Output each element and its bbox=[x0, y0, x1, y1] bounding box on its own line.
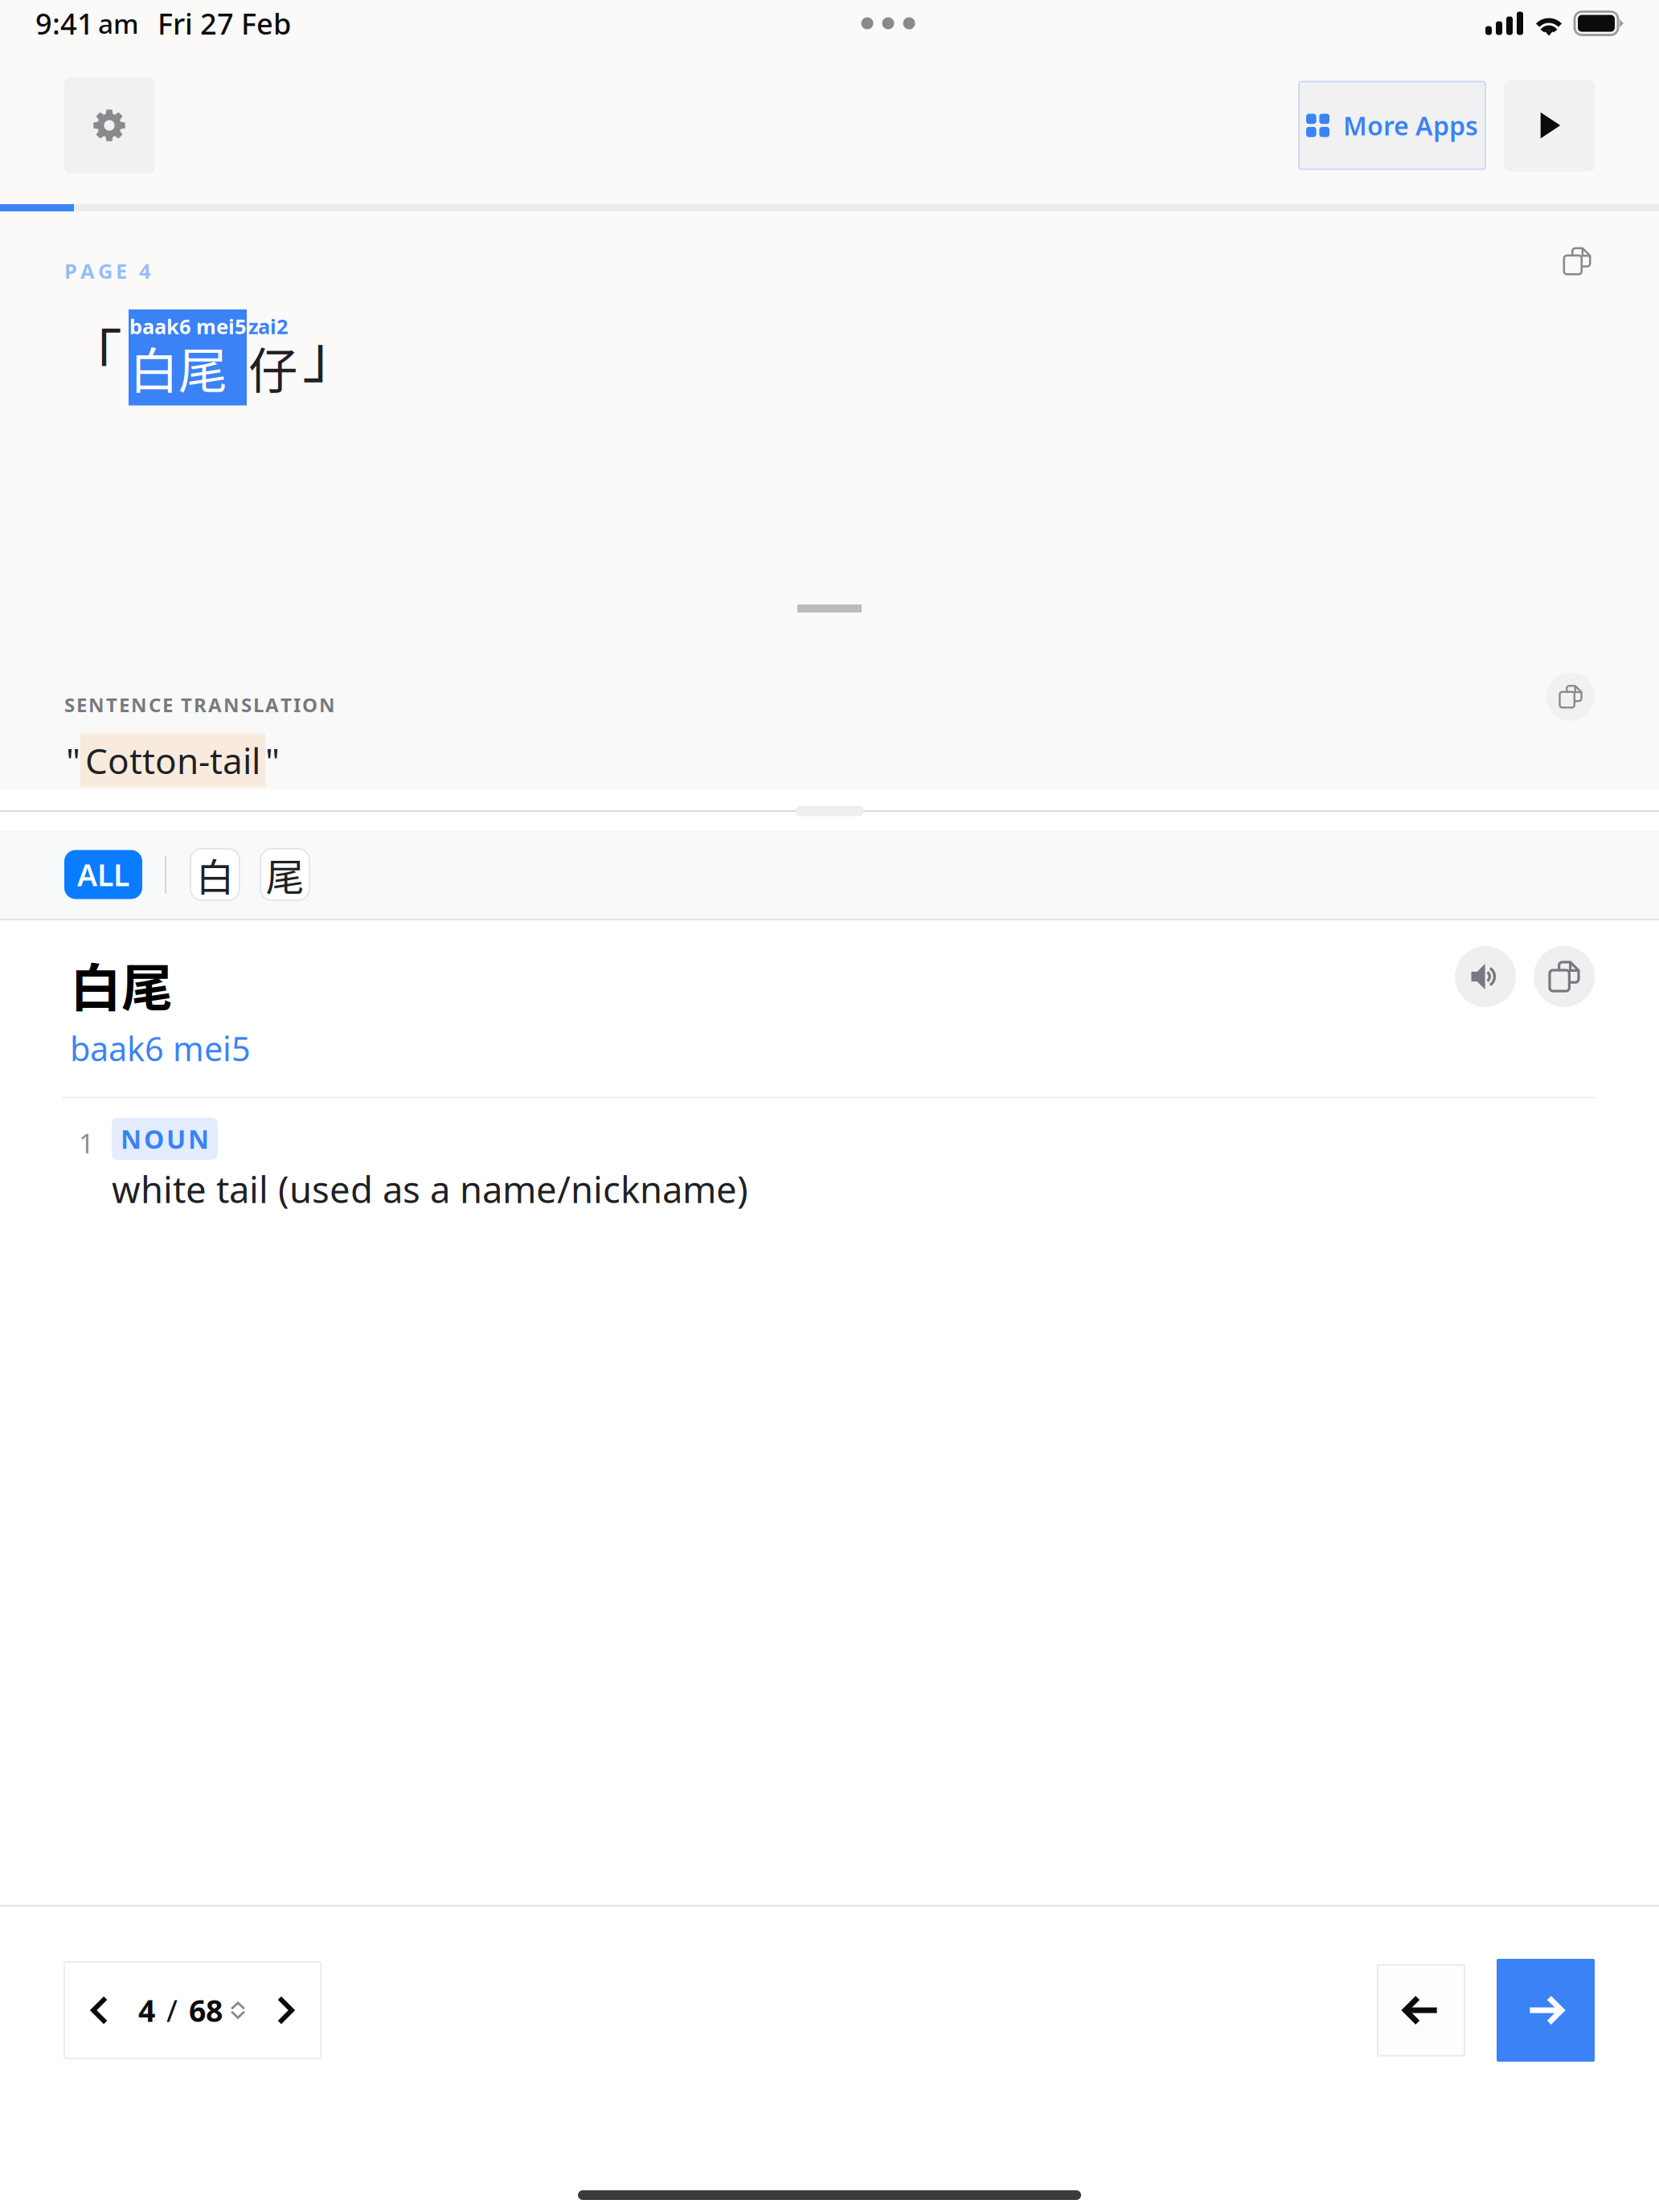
staticText: zai2 bbox=[248, 313, 288, 340]
staticText: P A G E 4 bbox=[64, 257, 150, 284]
button[interactable]: 尾 bbox=[260, 849, 309, 900]
button[interactable]: Play bbox=[1504, 80, 1595, 171]
button[interactable]: Previous page bbox=[85, 1996, 114, 2025]
staticText: S E N T E N C E T R A N S L A T I O N bbox=[64, 692, 335, 718]
button[interactable]: Settings bbox=[64, 78, 154, 173]
staticText: Fri 27 Feb bbox=[158, 4, 291, 43]
staticText: / bbox=[166, 1990, 178, 2030]
button[interactable]: ALL bbox=[64, 850, 142, 899]
staticText: white tail (used as a name/nickname) bbox=[112, 1165, 748, 1213]
button[interactable]: More Apps bbox=[1299, 82, 1485, 169]
staticText: 白 bbox=[196, 847, 234, 902]
staticText: N O U N bbox=[121, 1122, 209, 1156]
staticText: " bbox=[265, 737, 280, 784]
button[interactable]: Copy word bbox=[1534, 946, 1595, 1007]
staticText: baak6 mei5 bbox=[70, 1026, 251, 1070]
button[interactable]: Copy sentence bbox=[1556, 240, 1598, 282]
button[interactable]: Copy translation bbox=[1546, 673, 1595, 721]
staticText: 白尾 bbox=[70, 947, 173, 1021]
button[interactable]: Forward bbox=[1497, 1959, 1595, 2062]
staticText: More Apps bbox=[1343, 108, 1478, 143]
button[interactable]: Next page bbox=[271, 1996, 300, 2025]
button[interactable]: Play pronunciation bbox=[1455, 946, 1516, 1007]
button[interactable]: 白 bbox=[190, 849, 240, 900]
staticText: am bbox=[98, 6, 139, 41]
staticText: 仔 bbox=[248, 332, 297, 403]
staticText: 4 bbox=[138, 1990, 155, 2030]
staticText: 1 bbox=[79, 1125, 94, 1161]
staticText: 」 bbox=[302, 310, 360, 394]
staticText: 白尾 bbox=[129, 332, 227, 403]
staticText: 68 bbox=[189, 1990, 223, 2030]
staticText: 尾 bbox=[266, 847, 304, 902]
staticText: 9:41 bbox=[35, 4, 94, 43]
staticText: " bbox=[66, 737, 80, 784]
staticText: baak6 mei5 bbox=[129, 313, 246, 340]
staticText: ALL bbox=[77, 855, 129, 894]
button[interactable]: Back bbox=[1378, 1965, 1464, 2056]
staticText: 「 bbox=[64, 310, 122, 394]
staticText: Cotton-tail bbox=[85, 737, 260, 784]
